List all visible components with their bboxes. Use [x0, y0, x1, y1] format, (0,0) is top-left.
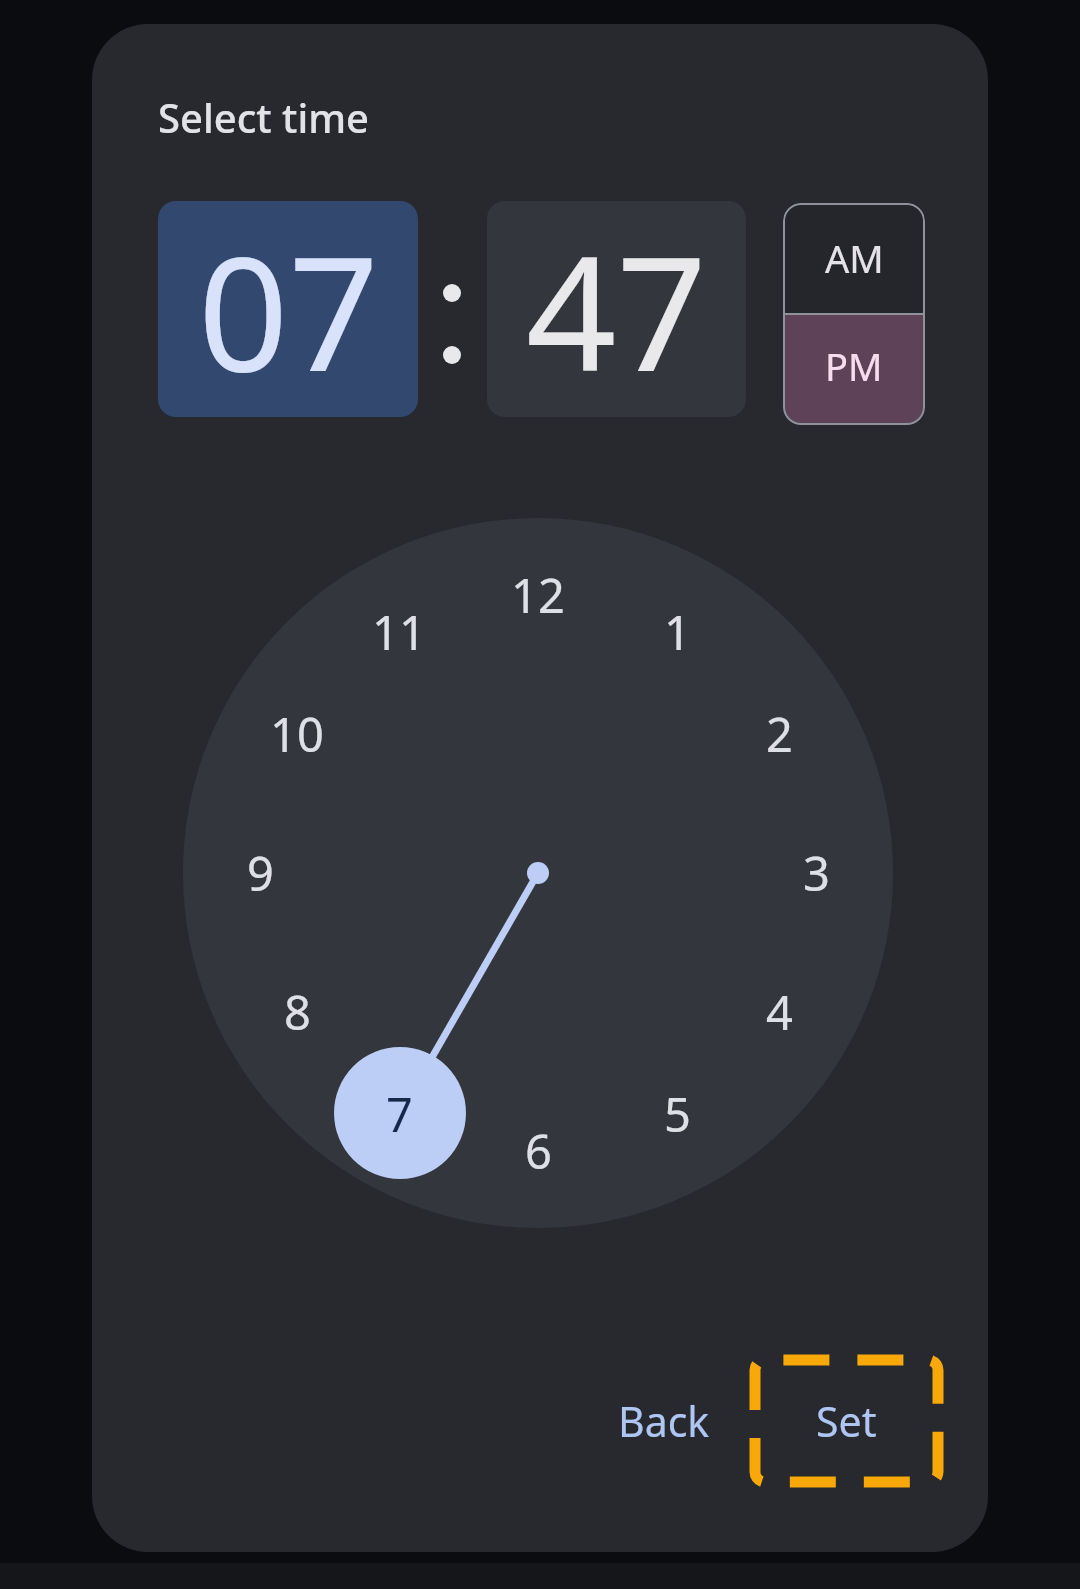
staticText: Set [816, 1393, 877, 1449]
staticText: 2 [766, 702, 793, 766]
button[interactable]: 7 [92, 24, 192, 94]
staticText: AM [825, 232, 884, 284]
staticText: 5 [664, 1082, 691, 1146]
staticText: 4 [766, 980, 793, 1044]
button[interactable]: 47 [487, 201, 746, 417]
staticText: 7 [386, 1082, 413, 1146]
staticText: 12 [511, 563, 565, 627]
staticText: 9 [247, 841, 274, 905]
staticText: Back [618, 1393, 710, 1449]
staticText: PM [825, 340, 883, 392]
staticText: 8 [284, 980, 311, 1044]
button[interactable]: AM [783, 203, 925, 313]
staticText: 47 [526, 202, 707, 417]
button[interactable]: Back [602, 1387, 726, 1455]
button[interactable]: Set [784, 1387, 908, 1455]
button[interactable]: PM [783, 315, 925, 425]
staticText: 11 [372, 600, 426, 664]
staticText: 10 [270, 702, 324, 766]
staticText: 1 [664, 600, 691, 664]
staticText: Select time [158, 90, 370, 144]
staticText: 6 [525, 1119, 552, 1183]
button[interactable]: 07 [158, 201, 418, 417]
staticText: 3 [803, 841, 830, 905]
staticText: 07 [198, 202, 379, 417]
